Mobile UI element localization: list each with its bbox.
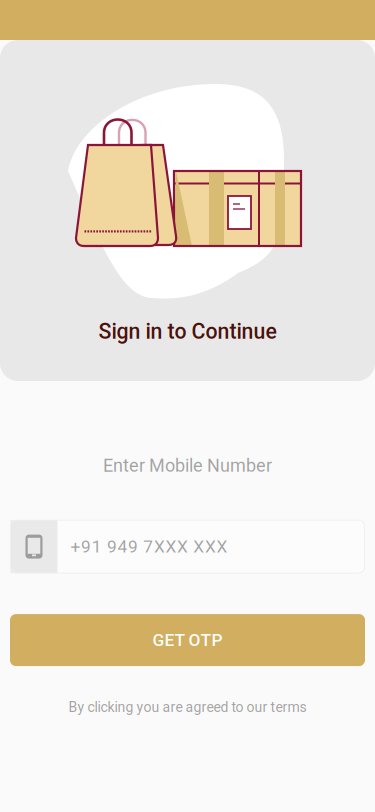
staticText: By clicking you are agreed to our terms: [68, 699, 306, 715]
button[interactable]: GET OTP: [10, 614, 365, 666]
staticText: Enter Mobile Number: [103, 455, 272, 476]
staticText: GET OTP: [152, 630, 222, 650]
button[interactable]: +91 949 7XXX XXX: [10, 520, 364, 573]
staticText: Sign in to Continue: [98, 319, 276, 344]
staticText: +91 949 7XXX XXX: [70, 536, 227, 557]
